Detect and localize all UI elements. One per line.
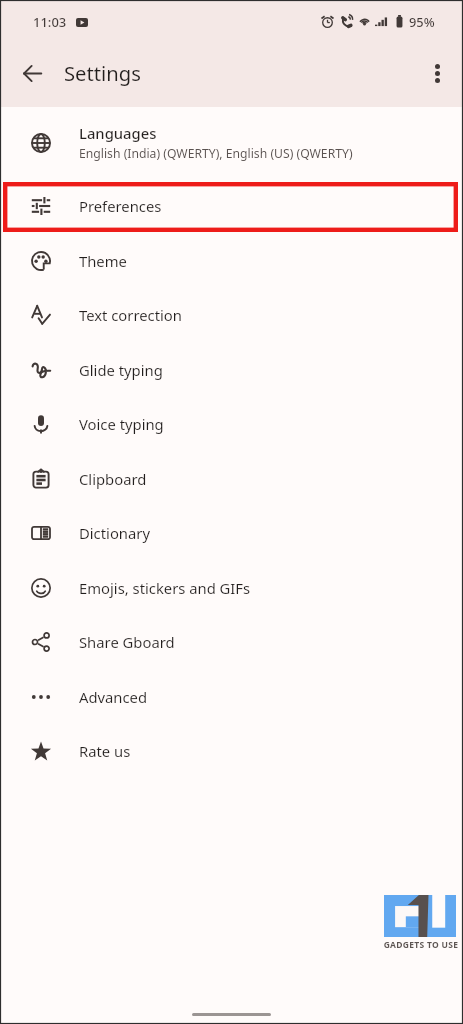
staticText: Text correction [79, 305, 182, 325]
button[interactable]: Emojis, stickers and GIFs [0, 560, 463, 615]
staticText: Theme [79, 251, 127, 271]
staticText: Emojis, stickers and GIFs [79, 578, 251, 598]
staticText: Rate us [79, 741, 131, 761]
button[interactable]: Rate us [0, 723, 463, 778]
button[interactable]: Dictionary [0, 505, 463, 560]
button[interactable]: Advanced [0, 669, 463, 724]
staticText: Preferences [79, 196, 162, 216]
staticText: Voice typing [79, 414, 164, 434]
staticText: GADGETS TO USE [382, 939, 460, 951]
staticText: 11:03 [33, 13, 67, 31]
button[interactable]: Clipboard [0, 451, 463, 506]
button[interactable]: Languages [0, 115, 463, 170]
button[interactable]: Theme [0, 233, 463, 288]
staticText: Languages [79, 123, 157, 143]
button[interactable]: Voice typing [0, 396, 463, 451]
button[interactable]: Text correction [0, 287, 463, 342]
button[interactable]: Preferences [0, 178, 463, 233]
staticText: Dictionary [79, 523, 150, 543]
staticText: Glide typing [79, 360, 163, 380]
button[interactable]: Glide typing [0, 342, 463, 397]
staticText: Advanced [79, 687, 148, 707]
staticText: English (India) (QWERTY), English (US) (… [79, 145, 353, 162]
staticText: 95% [409, 13, 435, 30]
staticText: Share Gboard [79, 632, 175, 652]
staticText: Settings [64, 59, 141, 87]
staticText: Clipboard [79, 469, 147, 489]
button[interactable]: Back [10, 51, 54, 95]
button[interactable]: More options [417, 53, 457, 93]
button[interactable]: Share Gboard [0, 614, 463, 669]
